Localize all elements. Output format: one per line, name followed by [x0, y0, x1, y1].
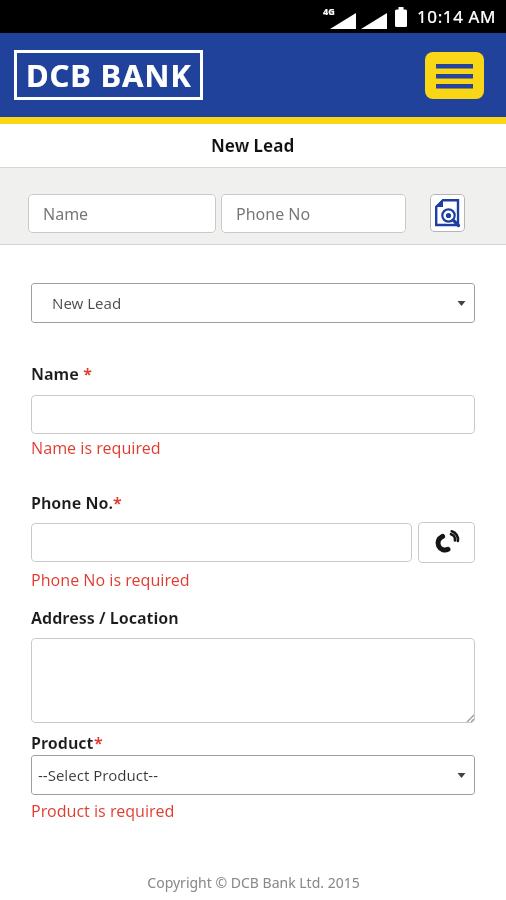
staticText: Name	[31, 363, 79, 385]
staticText: Address / Location	[31, 607, 179, 629]
button[interactable]: Name	[28, 194, 216, 233]
staticText: Copyright © DCB Bank Ltd. 2015	[147, 873, 360, 892]
staticText: DCB BANK	[26, 54, 192, 96]
button[interactable]: New Lead	[31, 283, 475, 323]
staticText: *	[113, 492, 122, 514]
staticText: *	[79, 363, 92, 385]
button[interactable]	[31, 523, 412, 562]
staticText: Phone No.	[31, 492, 113, 514]
button[interactable]	[31, 638, 475, 723]
staticText: *	[94, 732, 103, 754]
staticText: New Lead	[211, 134, 295, 157]
button[interactable]	[430, 194, 465, 232]
staticText: Phone No	[236, 203, 311, 225]
staticText: 10:14 AM	[417, 5, 496, 28]
button[interactable]: DCB BANK	[14, 50, 203, 100]
staticText: Product	[31, 732, 94, 754]
button[interactable]: --Select Product--	[31, 755, 475, 795]
button[interactable]	[418, 522, 475, 563]
staticText: Phone No is required	[31, 569, 190, 591]
button[interactable]	[31, 395, 475, 434]
staticText: Name	[43, 203, 89, 225]
staticText: New Lead	[52, 293, 122, 313]
button[interactable]	[425, 52, 484, 99]
staticText: Name is required	[31, 437, 161, 459]
button[interactable]: Phone No	[221, 194, 406, 233]
staticText: 4G	[323, 5, 335, 17]
staticText: Product is required	[31, 800, 175, 822]
staticText: --Select Product--	[38, 765, 159, 785]
